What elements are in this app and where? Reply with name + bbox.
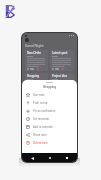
staticText: Good Night bbox=[25, 43, 44, 48]
button[interactable]: Share note bbox=[22, 131, 77, 139]
button[interactable]: Star note bbox=[22, 91, 77, 99]
button[interactable]: Profile bbox=[25, 38, 29, 42]
staticText: Push to top bbox=[33, 101, 48, 105]
staticText: Shopping bbox=[43, 85, 57, 89]
staticText: New Order bbox=[27, 51, 41, 55]
staticText: Add to calendar bbox=[33, 125, 53, 129]
button[interactable]: Set reminder bbox=[22, 115, 77, 123]
button[interactable]: Add to calendar bbox=[22, 123, 77, 131]
staticText: Delete note bbox=[33, 141, 48, 145]
button[interactable]: Recent apps bbox=[64, 155, 70, 161]
staticText: Pin as notification bbox=[33, 109, 56, 113]
staticText: Latest sport bbox=[52, 51, 68, 55]
staticText: Shopping bbox=[27, 74, 40, 78]
button[interactable]: Delete note bbox=[22, 139, 77, 147]
button[interactable]: Shopping bbox=[25, 73, 48, 90]
staticText: Set reminder bbox=[33, 117, 50, 121]
button[interactable]: Back bbox=[29, 155, 35, 161]
staticText: Project idea bbox=[52, 74, 68, 78]
button[interactable]: Home bbox=[47, 155, 53, 161]
staticText: Star note bbox=[33, 93, 45, 97]
button[interactable]: New Order bbox=[25, 50, 48, 71]
button[interactable]: Push to top bbox=[22, 99, 77, 107]
button[interactable]: Pin as notification bbox=[22, 107, 77, 115]
button[interactable]: Project idea bbox=[50, 73, 74, 90]
button[interactable]: Latest sport bbox=[50, 50, 74, 71]
staticText: Share note bbox=[33, 133, 47, 137]
